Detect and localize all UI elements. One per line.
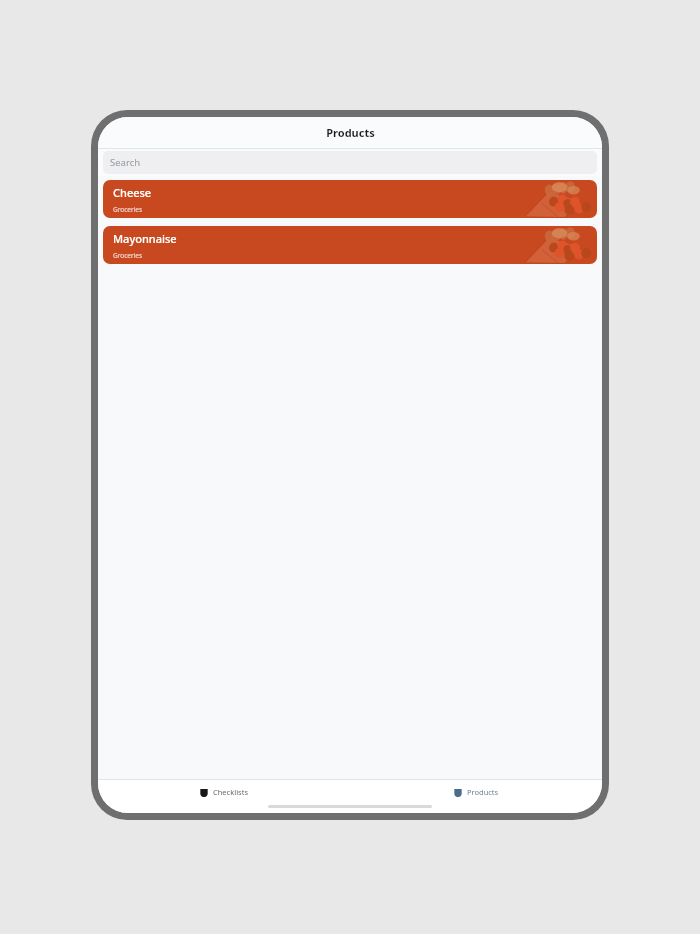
button[interactable]: Cheese	[103, 180, 597, 218]
staticText: Groceries	[113, 205, 143, 214]
button[interactable]: Search	[103, 151, 597, 174]
staticText: Groceries	[113, 251, 143, 260]
staticText: Search	[110, 156, 141, 169]
button[interactable]: Products	[350, 780, 602, 804]
staticText: Cheese	[113, 185, 152, 200]
button[interactable]: Checklists	[98, 780, 350, 804]
staticText: Mayonnaise	[113, 231, 177, 246]
staticText: Products	[467, 787, 499, 797]
button[interactable]: Mayonnaise	[103, 226, 597, 264]
staticText: Checklists	[213, 787, 248, 797]
staticText: Products	[326, 125, 375, 140]
